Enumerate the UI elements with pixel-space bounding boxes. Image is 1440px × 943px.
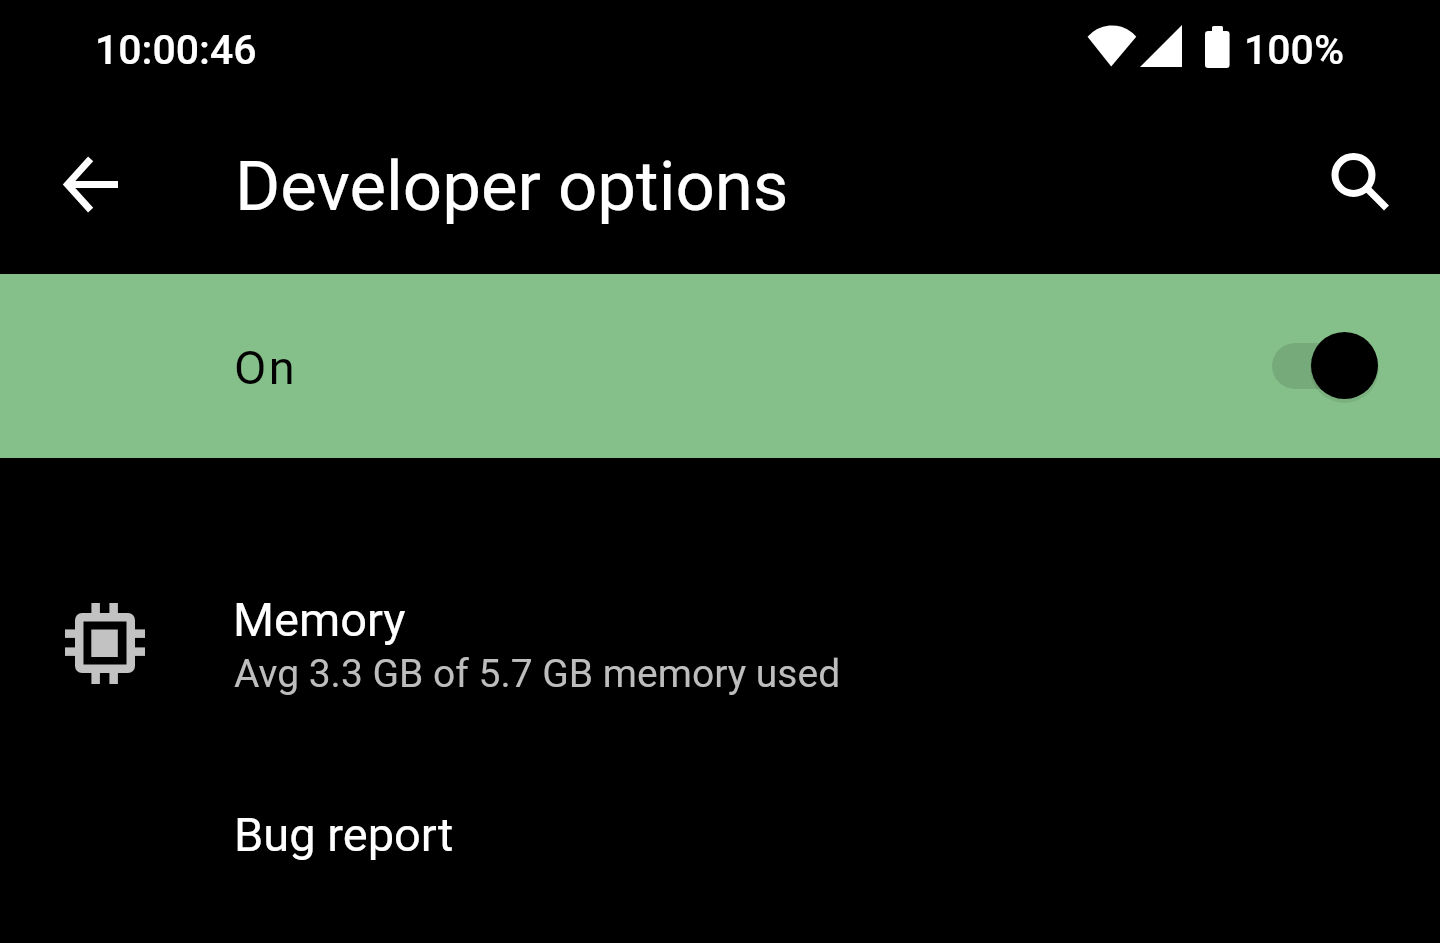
staticText: Memory bbox=[233, 592, 406, 647]
staticText: 10:00:46 bbox=[95, 26, 257, 74]
button[interactable]: Bug report bbox=[0, 760, 1440, 943]
staticText: Bug report bbox=[234, 807, 454, 862]
staticText: Avg 3.3 GB of 5.7 GB memory used bbox=[234, 651, 841, 697]
button[interactable]: Navigate up bbox=[37, 130, 145, 238]
staticText: On bbox=[234, 340, 298, 395]
button[interactable]: On bbox=[0, 274, 1440, 458]
staticText: 100% bbox=[1244, 26, 1345, 74]
button[interactable]: Search bbox=[1307, 130, 1415, 238]
staticText: Developer options bbox=[235, 146, 789, 227]
button[interactable]: Use developer options bbox=[1272, 331, 1382, 403]
button[interactable]: Memory bbox=[0, 536, 1440, 748]
